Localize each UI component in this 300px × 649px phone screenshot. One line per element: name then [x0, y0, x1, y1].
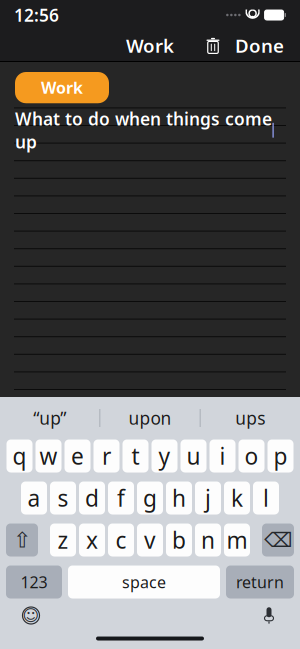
button[interactable]: b — [166, 523, 192, 556]
staticText: h — [172, 483, 186, 513]
staticText: b — [172, 525, 186, 555]
button[interactable]: l — [253, 481, 279, 514]
staticText: ☺ — [22, 606, 39, 625]
button[interactable]: n — [195, 523, 221, 556]
staticText: d — [85, 483, 99, 513]
button[interactable]: g — [137, 481, 163, 514]
button[interactable]: space — [68, 565, 220, 598]
staticText: s — [57, 483, 68, 513]
button[interactable]: d — [79, 481, 105, 514]
staticText: q — [12, 441, 26, 471]
staticText: o — [244, 441, 258, 471]
button[interactable]: i — [209, 439, 235, 472]
staticText: ⌫ — [264, 529, 292, 551]
button[interactable]: e — [64, 439, 90, 472]
staticText: n — [201, 525, 215, 555]
button[interactable]: c — [108, 523, 134, 556]
staticText: p — [273, 441, 287, 471]
button[interactable]: s — [50, 481, 76, 514]
button[interactable]: m — [224, 523, 250, 556]
staticText: f — [117, 483, 125, 513]
button[interactable]: f — [108, 481, 134, 514]
button[interactable]: “up” — [0, 399, 99, 436]
staticText: v — [144, 525, 156, 555]
button[interactable]: ups — [201, 399, 300, 436]
staticText: c — [115, 525, 126, 555]
button[interactable]: Dictate — [252, 602, 286, 628]
button[interactable]: Done — [229, 28, 290, 62]
button[interactable]: o — [238, 439, 264, 472]
staticText: Done — [235, 33, 284, 58]
button[interactable]: return — [226, 565, 294, 598]
staticText: return — [236, 571, 284, 593]
staticText: r — [102, 441, 111, 471]
staticText: What to do when things come up — [15, 107, 272, 153]
staticText: e — [71, 441, 84, 471]
button[interactable]: h — [166, 481, 192, 514]
staticText: m — [226, 525, 247, 555]
staticText: space — [122, 571, 166, 593]
staticText: 12:56 — [14, 3, 59, 26]
staticText: k — [231, 483, 243, 513]
button[interactable]: r — [93, 439, 119, 472]
button[interactable]: y — [151, 439, 177, 472]
staticText: Work — [41, 77, 83, 98]
staticText: u — [186, 441, 200, 471]
button[interactable]: t — [122, 439, 148, 472]
staticText: upon — [128, 406, 171, 429]
staticText: l — [263, 483, 269, 513]
staticText: a — [27, 483, 40, 513]
staticText: “up” — [33, 406, 66, 429]
button[interactable]: Emoji — [14, 602, 48, 628]
button[interactable]: Delete note — [197, 28, 229, 62]
staticText: w — [39, 441, 57, 471]
staticText: i — [219, 441, 225, 471]
button[interactable]: x — [79, 523, 105, 556]
button[interactable]: v — [137, 523, 163, 556]
staticText: y — [158, 441, 170, 471]
button[interactable]: w — [35, 439, 61, 472]
staticText: ups — [235, 406, 265, 429]
button[interactable]: u — [180, 439, 206, 472]
staticText: x — [86, 525, 98, 555]
button[interactable]: z — [50, 523, 76, 556]
staticText: z — [57, 525, 68, 555]
button[interactable]: 123 — [6, 565, 62, 598]
staticText: ⇧ — [13, 528, 31, 552]
staticText: 123 — [20, 571, 47, 593]
button[interactable]: q — [6, 439, 32, 472]
staticText: t — [131, 441, 139, 471]
staticText: Work — [126, 33, 174, 58]
button[interactable]: j — [195, 481, 221, 514]
button[interactable]: k — [224, 481, 250, 514]
button[interactable]: Shift — [6, 523, 38, 556]
button[interactable]: upon — [100, 399, 200, 436]
button[interactable]: a — [21, 481, 47, 514]
button[interactable]: p — [267, 439, 293, 472]
button[interactable]: Work — [15, 72, 109, 103]
button[interactable]: Delete — [262, 523, 294, 556]
staticText: j — [205, 483, 211, 513]
staticText: g — [143, 483, 157, 513]
